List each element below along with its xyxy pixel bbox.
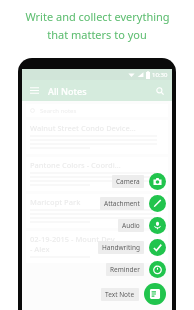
staticText: Attachment	[104, 199, 140, 208]
staticText: Pantone Colors - Coordi...	[30, 160, 121, 170]
other: Audio	[149, 217, 166, 234]
button[interactable]: Search	[153, 84, 166, 97]
staticText: Handwriting	[102, 243, 140, 252]
button[interactable]: Open navigation menu	[28, 84, 41, 97]
staticText: Camera	[116, 177, 140, 186]
staticText: Maricopt Park	[30, 197, 81, 207]
other: Camera	[149, 173, 166, 190]
button[interactable]: Pantone Colors - Coordi...	[26, 157, 168, 191]
button[interactable]: Walnut Street Condo Device...	[26, 120, 168, 154]
button[interactable]: Handwriting	[98, 239, 166, 256]
button[interactable]: 02-19-2015 - Mount Dev... - Alex	[26, 231, 168, 263]
staticText: Reminder	[110, 265, 140, 274]
button[interactable]: Audio	[118, 217, 166, 234]
staticText: Text Note	[105, 290, 135, 299]
other: Reminder	[149, 261, 166, 278]
staticText: Write and collect everything	[25, 9, 170, 24]
button[interactable]: Attachment	[100, 195, 166, 212]
staticText: Audio	[122, 221, 140, 230]
staticText: that matters to you	[47, 27, 147, 42]
button[interactable]: Maricopt Park	[26, 194, 168, 228]
button[interactable]: Reminder	[106, 261, 166, 278]
other: Attachment	[149, 195, 166, 212]
staticText: Walnut Street Condo Device...	[30, 123, 136, 133]
button[interactable]: New text note	[144, 283, 166, 305]
staticText: All Notes	[48, 85, 87, 97]
button[interactable]: Camera	[112, 173, 166, 190]
staticText: Search notes	[40, 107, 77, 115]
staticText: 02-19-2015 - Mount Dev... - Alex	[30, 234, 121, 254]
other: Handwriting	[149, 239, 166, 256]
staticText: 10:30	[152, 71, 168, 79]
